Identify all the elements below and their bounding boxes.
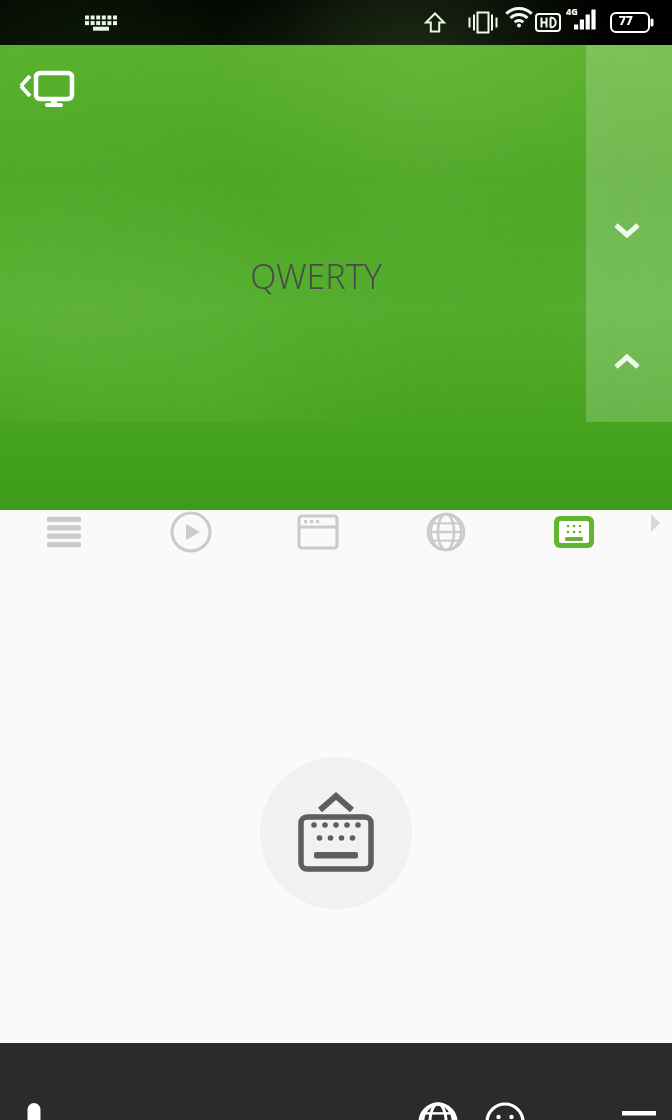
staticText: 4G xyxy=(566,5,578,17)
button[interactable]: Scroll down xyxy=(596,337,658,393)
button[interactable]: Language xyxy=(382,510,510,556)
button[interactable]: Window xyxy=(254,510,382,556)
button[interactable]: Scroll up xyxy=(596,205,658,261)
button[interactable]: More xyxy=(638,510,672,536)
button[interactable]: Back to display xyxy=(4,61,84,115)
staticText: 77 xyxy=(619,12,633,28)
button[interactable]: Play xyxy=(127,510,254,556)
button[interactable]: Menu xyxy=(0,510,127,556)
staticText: QWERTY xyxy=(250,253,382,299)
button[interactable]: Keyboard xyxy=(510,510,638,556)
button[interactable]: Show keyboard xyxy=(260,757,412,909)
